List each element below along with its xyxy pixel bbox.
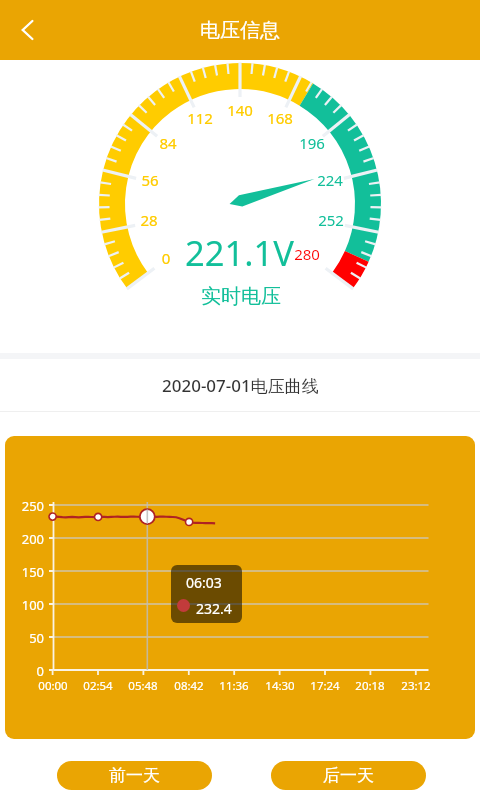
staticText: 05:48 (118, 678, 168, 694)
staticText: 250 (5, 497, 44, 515)
staticText: 实时电压 (141, 284, 341, 309)
staticText: 168 (260, 108, 300, 128)
staticText: 20:18 (345, 678, 395, 694)
staticText: 112 (180, 108, 220, 128)
staticText: 28 (129, 210, 169, 230)
staticText: 56 (130, 170, 170, 190)
staticText: 前一天 (109, 765, 160, 786)
staticText: 280 (287, 244, 327, 264)
staticText: 50 (5, 629, 44, 647)
staticText: 84 (148, 133, 188, 153)
staticText: 140 (220, 100, 260, 120)
staticText: 200 (5, 530, 44, 548)
button[interactable]: 后一天 (271, 761, 426, 790)
staticText: 224 (310, 170, 350, 190)
staticText: 电压信息 (200, 18, 280, 43)
staticText: 14:30 (255, 678, 305, 694)
staticText: 221.1V (185, 229, 294, 276)
staticText: 06:03 (186, 573, 222, 592)
button[interactable]: 前一天 (57, 761, 212, 790)
staticText: 0 (5, 662, 44, 680)
staticText: 00:00 (28, 678, 78, 694)
staticText: 150 (5, 563, 44, 581)
staticText: 100 (5, 596, 44, 614)
staticText: 02:54 (73, 678, 123, 694)
staticText: 17:24 (300, 678, 350, 694)
staticText: 后一天 (323, 765, 374, 786)
staticText: 232.4 (196, 599, 232, 618)
staticText: 0 (146, 248, 186, 268)
staticText: 11:36 (209, 678, 259, 694)
staticText: 252 (311, 210, 351, 230)
button[interactable]: Back (5, 7, 51, 53)
staticText: 23:12 (391, 678, 441, 694)
staticText: 196 (292, 133, 332, 153)
staticText: 08:42 (164, 678, 214, 694)
staticText: 2020-07-01电压曲线 (162, 374, 319, 397)
